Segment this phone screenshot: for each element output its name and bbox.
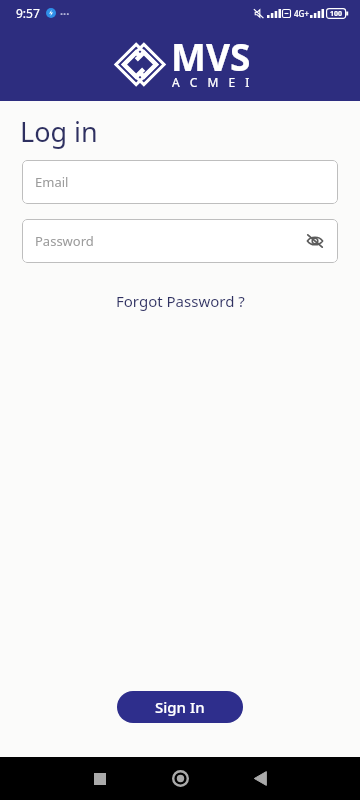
staticText: 4G+ [294,8,309,19]
staticText: Email [35,173,69,191]
staticText: MVS [171,31,251,81]
button[interactable]: Home [140,757,220,800]
staticText: 9:57 [16,5,40,21]
staticText: Sign In [155,697,205,717]
staticText: 100 [330,9,343,19]
button[interactable]: Back [220,757,300,800]
button[interactable]: Email [22,160,338,204]
staticText: Forgot Password ? [116,291,245,311]
button[interactable]: Show password [303,229,327,253]
staticText: Password [35,232,94,250]
staticText: ··· [60,6,70,21]
button[interactable]: Recent apps [60,757,140,800]
staticText: Log in [20,113,98,150]
staticText: ACMEI [172,74,260,90]
button[interactable]: Sign In [117,691,243,723]
button[interactable]: Password [22,219,338,263]
button[interactable]: Forgot Password ? [110,288,251,314]
